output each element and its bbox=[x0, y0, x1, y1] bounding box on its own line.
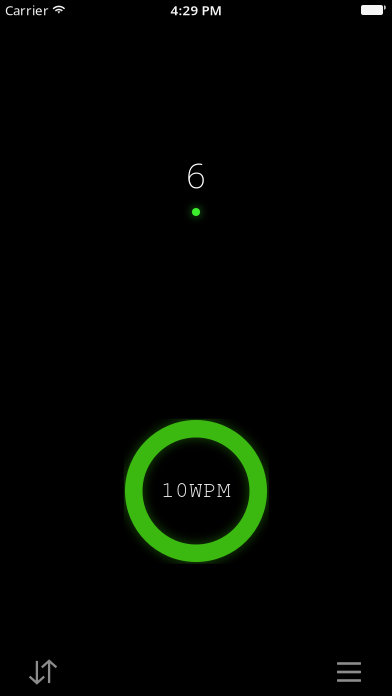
staticText: 4:29 PM bbox=[170, 1, 221, 19]
staticText: 6 bbox=[186, 152, 206, 198]
staticText: 10WPM bbox=[161, 475, 231, 503]
staticText: Carrier bbox=[5, 1, 49, 19]
button[interactable]: Swap direction bbox=[14, 648, 72, 696]
button[interactable]: 10WPM bbox=[116, 411, 276, 571]
button[interactable]: Menu bbox=[320, 648, 378, 696]
